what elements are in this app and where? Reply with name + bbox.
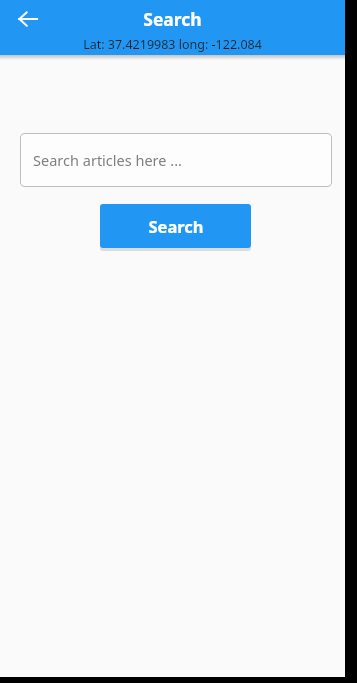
staticText: Lat: 37.4219983 long: -122.084	[83, 36, 262, 53]
staticText: Search	[143, 7, 202, 31]
button[interactable]: Search articles here ...	[20, 133, 332, 187]
staticText: Search	[148, 215, 204, 237]
staticText: Search articles here ...	[33, 150, 182, 170]
button[interactable]: Back	[9, 0, 47, 37]
button[interactable]: Search	[100, 204, 251, 248]
